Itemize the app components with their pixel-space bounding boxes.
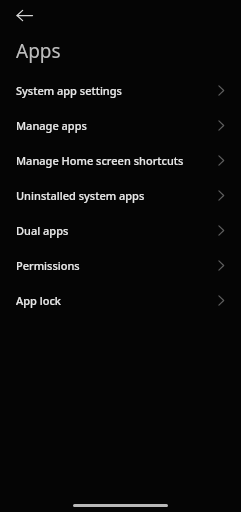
button[interactable]: Dual apps	[0, 213, 241, 248]
staticText: Dual apps	[16, 223, 69, 238]
button[interactable]: System app settings	[0, 73, 241, 108]
staticText: Uninstalled system apps	[16, 188, 145, 203]
button[interactable]: Permissions	[0, 248, 241, 283]
staticText: Permissions	[16, 258, 80, 273]
staticText: Manage apps	[16, 118, 87, 133]
button[interactable]: Manage Home screen shortcuts	[0, 143, 241, 178]
staticText: Apps	[16, 38, 61, 64]
staticText: System app settings	[16, 83, 122, 98]
button[interactable]: Back	[10, 1, 38, 29]
button[interactable]: Manage apps	[0, 108, 241, 143]
button[interactable]: Uninstalled system apps	[0, 178, 241, 213]
staticText: App lock	[16, 293, 61, 308]
button[interactable]: App lock	[0, 283, 241, 318]
staticText: Manage Home screen shortcuts	[16, 153, 184, 168]
